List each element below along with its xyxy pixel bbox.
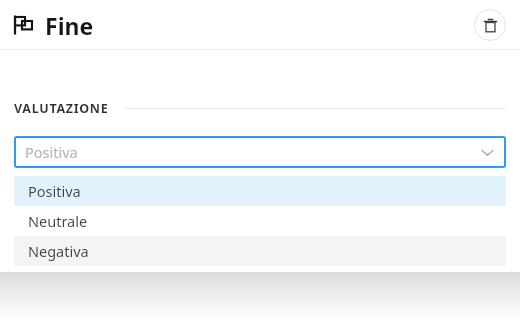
button[interactable]: Neutrale (14, 206, 506, 236)
staticText: Neutrale (28, 211, 88, 231)
staticText: Negativa (28, 241, 89, 261)
button[interactable]: Positiva (14, 136, 506, 168)
button[interactable]: Elimina (474, 9, 506, 41)
staticText: Fine (45, 10, 94, 41)
other: Bandiera (14, 15, 34, 35)
staticText: Positiva (28, 181, 81, 201)
staticText: Positiva (25, 142, 78, 162)
staticText: VALUTAZIONE (14, 100, 109, 117)
button[interactable]: Negativa (14, 236, 506, 266)
button[interactable]: Positiva (14, 176, 506, 206)
